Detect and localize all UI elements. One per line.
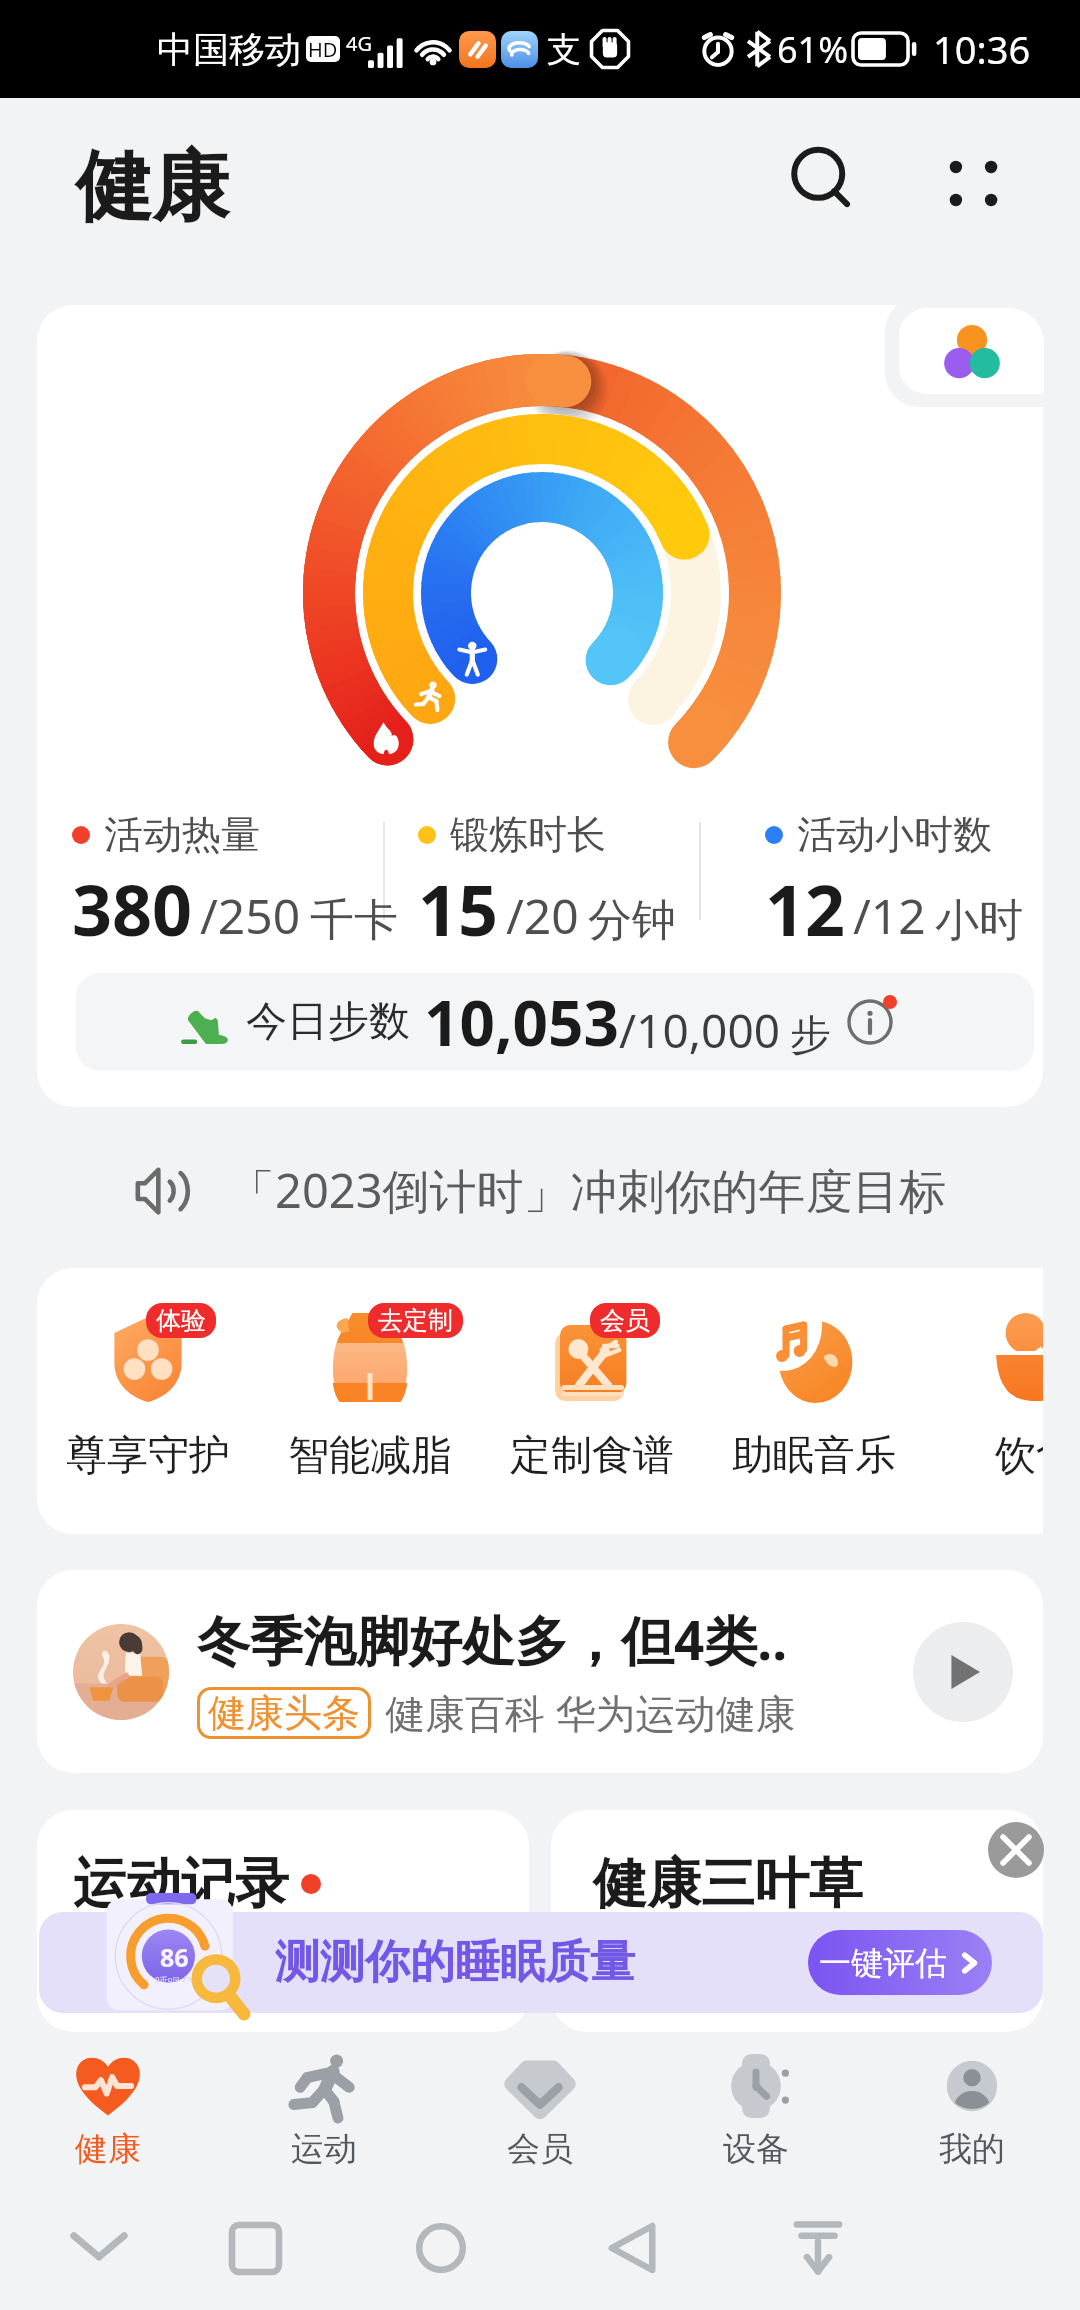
staticText: 小时 bbox=[935, 893, 1023, 948]
staticText: 今日步数 bbox=[246, 996, 410, 1048]
staticText: 健康百科 华为运动健康 bbox=[385, 1685, 796, 1740]
staticText: 步 bbox=[790, 1010, 831, 1062]
staticText: /250 bbox=[200, 883, 301, 948]
staticText: 健康三叶草 bbox=[593, 1850, 863, 1918]
staticText: 测测你的睡眠质量 bbox=[275, 1934, 635, 1991]
staticText: 会员 bbox=[600, 1305, 650, 1336]
button[interactable]: 会员 bbox=[432, 2040, 648, 2170]
button[interactable]: 助眠音乐 bbox=[703, 1268, 925, 1534]
staticText: 分钟 bbox=[588, 893, 676, 948]
button[interactable]: 测测你的睡眠质量 bbox=[39, 1912, 1043, 2013]
staticText: HD bbox=[308, 36, 338, 62]
button[interactable]: 冬季泡脚好处多，但4类.. bbox=[37, 1570, 1043, 1773]
button[interactable]: 设备 bbox=[648, 2040, 864, 2170]
staticText: 活动热量 bbox=[104, 810, 260, 859]
staticText: 活动小时数 bbox=[797, 810, 992, 859]
staticText: 去定制 bbox=[378, 1305, 453, 1336]
button[interactable]: 健康 bbox=[0, 2040, 216, 2170]
button[interactable]: Search bbox=[776, 133, 872, 229]
button[interactable]: More options bbox=[925, 137, 1021, 233]
staticText: 15 bbox=[418, 861, 499, 950]
staticText: 380 bbox=[72, 861, 193, 950]
staticText: 支 bbox=[547, 28, 581, 71]
staticText: 86 bbox=[160, 1940, 189, 1974]
button[interactable]: 饮食 bbox=[925, 1268, 1043, 1534]
staticText: 10:36 bbox=[933, 23, 1031, 75]
button[interactable]: 「2023倒计时」冲刺你的年度目标 bbox=[0, 1150, 1080, 1230]
staticText: 61% bbox=[777, 25, 849, 74]
button[interactable]: 体验 bbox=[37, 1268, 259, 1534]
staticText: 饮食 bbox=[995, 1430, 1043, 1482]
staticText: 尊享守护 bbox=[66, 1430, 230, 1482]
staticText: /20 bbox=[506, 883, 579, 948]
staticText: 健康头条 bbox=[208, 1689, 360, 1737]
staticText: 12 bbox=[765, 861, 846, 950]
staticText: 运动 bbox=[291, 2128, 357, 2170]
staticText: 「2023倒计时」冲刺你的年度目标 bbox=[228, 1158, 947, 1222]
staticText: 设备 bbox=[723, 2128, 789, 2170]
staticText: 睡眠分 bbox=[155, 1974, 194, 1982]
button[interactable]: Close bbox=[988, 1822, 1044, 1878]
button[interactable]: 运动 bbox=[216, 2040, 432, 2170]
staticText: 定制食谱 bbox=[510, 1430, 674, 1482]
staticText: 会员 bbox=[507, 2128, 573, 2170]
staticText: 助眠音乐 bbox=[732, 1430, 896, 1482]
staticText: 体验 bbox=[156, 1305, 206, 1336]
button[interactable]: 去定制 bbox=[259, 1268, 481, 1534]
staticText: 一键评估 bbox=[819, 1943, 947, 1983]
button[interactable]: 会员 bbox=[481, 1268, 703, 1534]
button[interactable]: 一键评估 bbox=[808, 1930, 992, 1995]
staticText: 中国移动 bbox=[157, 27, 301, 72]
button[interactable]: Play bbox=[913, 1622, 1013, 1722]
staticText: 智能减脂 bbox=[288, 1430, 452, 1482]
staticText: 10,053 bbox=[424, 980, 619, 1064]
button[interactable]: 活动热量 bbox=[37, 305, 1043, 1107]
staticText: 健康 bbox=[75, 2128, 141, 2170]
staticText: 千卡 bbox=[310, 893, 398, 948]
button[interactable]: 今日步数 bbox=[76, 973, 1034, 1071]
staticText: 健康 bbox=[75, 139, 229, 236]
staticText: /12 bbox=[853, 883, 926, 948]
staticText: 我的 bbox=[939, 2128, 1005, 2170]
button[interactable]: Health profile bbox=[899, 308, 1044, 394]
staticText: 4G bbox=[346, 30, 372, 57]
staticText: /10,000 bbox=[619, 999, 780, 1062]
staticText: 运动记录 bbox=[73, 1850, 289, 1918]
staticText: 冬季泡脚好处多，但4类.. bbox=[197, 1603, 788, 1675]
button[interactable]: 运动记录 bbox=[37, 1810, 529, 2032]
staticText: 锻炼时长 bbox=[450, 810, 606, 859]
button[interactable]: 健康三叶草 bbox=[551, 1810, 1043, 2032]
button[interactable]: 我的 bbox=[864, 2040, 1080, 2170]
